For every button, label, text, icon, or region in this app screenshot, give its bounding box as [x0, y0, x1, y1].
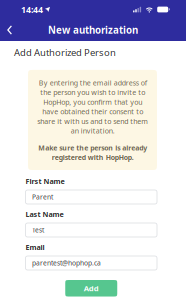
- staticText: New authorization: [48, 23, 138, 37]
- button[interactable]: Parent: [25, 190, 157, 204]
- button[interactable]: Test: [25, 223, 157, 237]
- staticText: Last Name: [25, 209, 63, 219]
- staticText: Parent: [32, 192, 53, 202]
- staticText: By entering the email address of the per…: [37, 78, 148, 136]
- button[interactable]: Back: [2, 20, 18, 40]
- staticText: parentest@hophop.ca: [32, 258, 101, 268]
- button[interactable]: parentest@hophop.ca: [25, 256, 157, 270]
- staticText: Add Authorized Person: [14, 46, 116, 59]
- staticText: First Name: [25, 176, 64, 186]
- staticText: Test: [32, 225, 44, 235]
- staticText: Make sure the person is already register…: [38, 143, 147, 162]
- staticText: 14:44: [21, 3, 43, 15]
- button[interactable]: Add: [65, 280, 117, 296]
- staticText: Email: [25, 242, 44, 252]
- staticText: Add: [84, 283, 99, 293]
